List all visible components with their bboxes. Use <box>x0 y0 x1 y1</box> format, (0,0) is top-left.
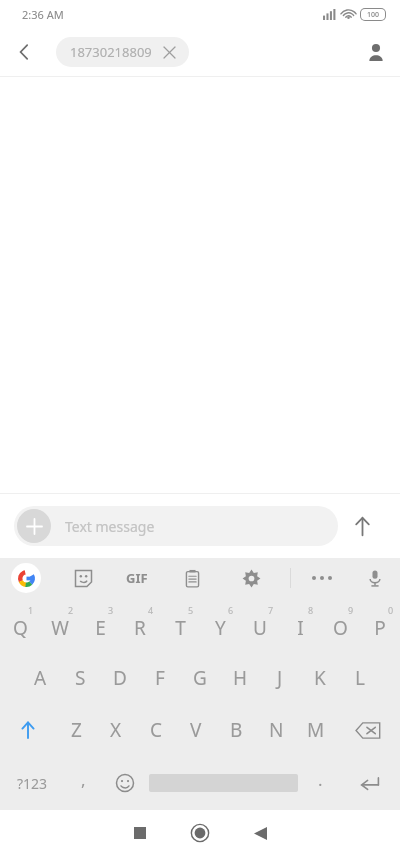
staticText: N <box>269 717 284 743</box>
staticText: Text message <box>65 517 155 536</box>
staticText: F <box>155 665 165 691</box>
button[interactable]: V <box>176 704 216 756</box>
staticText: I <box>297 615 304 641</box>
staticText: . <box>318 768 323 791</box>
button[interactable]: S <box>60 652 100 704</box>
button[interactable]: P <box>360 598 400 652</box>
button[interactable]: C <box>136 704 176 756</box>
staticText: 2 <box>68 604 74 616</box>
button[interactable]: Google <box>11 563 41 593</box>
staticText: M <box>307 717 325 743</box>
staticText: C <box>150 717 163 743</box>
button[interactable]: Q <box>0 598 40 652</box>
staticText: S <box>75 665 86 691</box>
button[interactable]: Z <box>56 704 96 756</box>
button[interactable]: Contact <box>352 28 400 76</box>
staticText: G <box>193 665 207 691</box>
button[interactable]: , <box>64 756 103 810</box>
staticText: 4 <box>148 604 154 616</box>
staticText: Y <box>215 615 226 641</box>
staticText: J <box>277 665 283 691</box>
staticText: 8 <box>308 604 314 616</box>
staticText: K <box>314 665 326 691</box>
button[interactable]: Y <box>200 598 240 652</box>
staticText: P <box>374 615 386 641</box>
staticText: E <box>95 615 106 641</box>
staticText: D <box>113 665 127 691</box>
staticText: W <box>51 615 69 641</box>
button[interactable]: Back <box>230 810 290 856</box>
button[interactable]: Home <box>170 810 230 856</box>
staticText: GIF <box>126 569 148 587</box>
button[interactable]: Enter <box>340 756 400 810</box>
button[interactable]: L <box>340 652 380 704</box>
button[interactable]: Stickers <box>66 561 100 595</box>
staticText: Q <box>13 615 28 641</box>
staticText: O <box>333 615 348 641</box>
button[interactable]: O <box>320 598 360 652</box>
staticText: 7 <box>268 604 274 616</box>
button[interactable]: Shift <box>0 704 56 756</box>
button[interactable]: R <box>120 598 160 652</box>
staticText: 5 <box>188 604 194 616</box>
staticText: A <box>34 665 47 691</box>
button[interactable]: . <box>301 756 340 810</box>
button[interactable]: X <box>96 704 136 756</box>
staticText: T <box>175 615 186 641</box>
button[interactable]: U <box>240 598 280 652</box>
button[interactable]: 18730218809 <box>56 37 189 67</box>
button[interactable]: GIF <box>118 559 156 597</box>
button[interactable]: F <box>140 652 180 704</box>
button[interactable]: Recents <box>110 810 170 856</box>
button[interactable]: T <box>160 598 200 652</box>
button[interactable]: A <box>20 652 60 704</box>
staticText: B <box>230 717 243 743</box>
button[interactable]: Voice input <box>358 561 392 595</box>
button[interactable]: N <box>256 704 296 756</box>
staticText: L <box>355 665 365 691</box>
button[interactable]: Send <box>338 502 386 550</box>
staticText: 1 <box>28 604 34 616</box>
staticText: U <box>253 615 267 641</box>
staticText: R <box>134 615 146 641</box>
staticText: , <box>81 768 86 791</box>
button[interactable]: M <box>296 704 336 756</box>
staticText: 100 <box>367 10 380 20</box>
button[interactable]: W <box>40 598 80 652</box>
button[interactable]: E <box>80 598 120 652</box>
staticText: Z <box>71 717 82 743</box>
button[interactable]: Clipboard <box>175 561 209 595</box>
staticText: V <box>190 717 202 743</box>
button[interactable]: Back <box>0 28 48 76</box>
button[interactable]: H <box>220 652 260 704</box>
staticText: 18730218809 <box>70 43 152 61</box>
button[interactable]: J <box>260 652 300 704</box>
staticText: 6 <box>228 604 234 616</box>
button[interactable] <box>146 756 301 810</box>
staticText: 2:36 AM <box>22 7 64 22</box>
button[interactable]: Settings <box>234 561 268 595</box>
button[interactable]: More options <box>305 561 339 595</box>
button[interactable]: D <box>100 652 140 704</box>
button[interactable]: Attach <box>14 506 338 546</box>
button[interactable]: Attach <box>17 509 51 543</box>
staticText: 0 <box>388 604 394 616</box>
staticText: X <box>110 717 122 743</box>
staticText: 9 <box>348 604 354 616</box>
button[interactable]: Emoji <box>103 756 146 810</box>
button[interactable]: G <box>180 652 220 704</box>
button[interactable]: K <box>300 652 340 704</box>
button[interactable]: B <box>216 704 256 756</box>
button[interactable]: ?123 <box>0 756 64 810</box>
staticText: ?123 <box>17 774 48 793</box>
staticText: 3 <box>108 604 114 616</box>
button[interactable]: I <box>280 598 320 652</box>
staticText: H <box>233 665 248 691</box>
button[interactable]: Backspace <box>336 704 400 756</box>
